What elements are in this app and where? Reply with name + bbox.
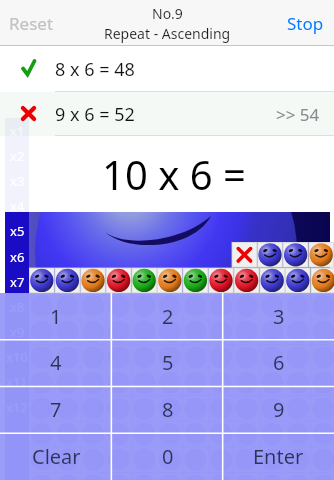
staticText: Enter	[253, 443, 304, 470]
button[interactable]: 5	[112, 339, 223, 386]
button[interactable]: 0	[112, 433, 223, 480]
button[interactable]: 3	[223, 293, 334, 339]
staticText: x5	[10, 222, 25, 240]
staticText: x2	[10, 147, 25, 165]
staticText: x3	[10, 172, 25, 190]
staticText: x6	[10, 248, 25, 266]
staticText: 2	[162, 303, 174, 330]
button[interactable]: 9	[223, 386, 334, 433]
staticText: 3	[273, 303, 285, 330]
staticText: x7	[10, 273, 25, 291]
staticText: 5	[162, 349, 174, 376]
button[interactable]: Reset	[9, 12, 54, 35]
staticText: x4	[10, 197, 25, 215]
staticText: x11	[6, 373, 28, 391]
button[interactable]: 9 x 6 = 52	[0, 92, 334, 136]
staticText: 8 x 6 = 48	[55, 57, 135, 82]
button[interactable]: 8	[112, 386, 223, 433]
button[interactable]: Clear	[0, 433, 112, 480]
staticText: 7	[50, 396, 62, 423]
button[interactable]: Stop	[287, 12, 324, 35]
staticText: 9 x 6 = 52	[55, 102, 135, 127]
button[interactable]: Enter	[223, 433, 334, 480]
button[interactable]: 4	[0, 339, 112, 386]
staticText: 9	[273, 396, 285, 423]
staticText: 6	[273, 349, 285, 376]
staticText: x1	[10, 122, 25, 140]
staticText: 8	[162, 396, 174, 423]
staticText: >> 54	[276, 103, 320, 126]
staticText: 1	[50, 303, 62, 330]
staticText: Repeat - Ascending	[104, 24, 231, 43]
button[interactable]: 1	[0, 293, 112, 339]
staticText: Stop	[287, 12, 324, 35]
staticText: No.9	[152, 4, 183, 23]
staticText: 4	[50, 349, 62, 376]
button[interactable]: 2	[112, 293, 223, 339]
button[interactable]: 8 x 6 = 48	[0, 46, 334, 92]
button[interactable]: 7	[0, 386, 112, 433]
staticText: 10 x 6 =	[102, 147, 246, 201]
staticText: 0	[162, 443, 174, 470]
staticText: x9	[10, 323, 25, 341]
button[interactable]: 6	[223, 339, 334, 386]
staticText: Reset	[9, 12, 54, 35]
staticText: x8	[10, 298, 25, 316]
staticText: Clear	[32, 443, 81, 470]
